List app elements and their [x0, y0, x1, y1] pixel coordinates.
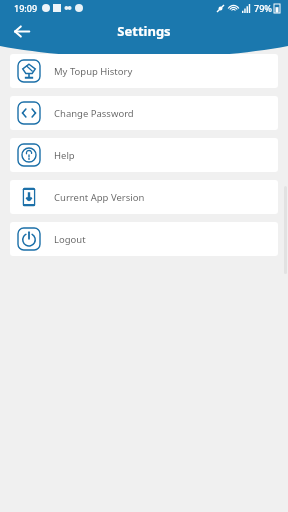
- staticText: 19:09: [14, 2, 38, 14]
- staticText: 79%: [254, 2, 272, 14]
- staticText: Current App Version: [54, 191, 145, 204]
- staticText: Logout: [54, 233, 86, 246]
- button[interactable]: Help: [10, 138, 278, 172]
- button[interactable]: My Topup History: [10, 54, 278, 88]
- staticText: My Topup History: [54, 65, 133, 78]
- staticText: Help: [54, 149, 75, 162]
- button[interactable]: Current App Version: [10, 180, 278, 214]
- button[interactable]: Logout: [10, 222, 278, 256]
- button[interactable]: Back: [8, 18, 34, 44]
- staticText: Settings: [117, 22, 171, 40]
- button[interactable]: Change Password: [10, 96, 278, 130]
- staticText: Change Password: [54, 107, 134, 120]
